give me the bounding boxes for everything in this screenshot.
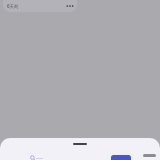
- button[interactable]: 6天前: [3, 0, 77, 12]
- button[interactable]: More options: [64, 0, 76, 12]
- button[interactable]: Search: [29, 154, 38, 160]
- staticText: 6天前: [7, 3, 19, 9]
- button[interactable]: Primary action: [111, 155, 131, 160]
- button[interactable]: Secondary action: [143, 154, 156, 157]
